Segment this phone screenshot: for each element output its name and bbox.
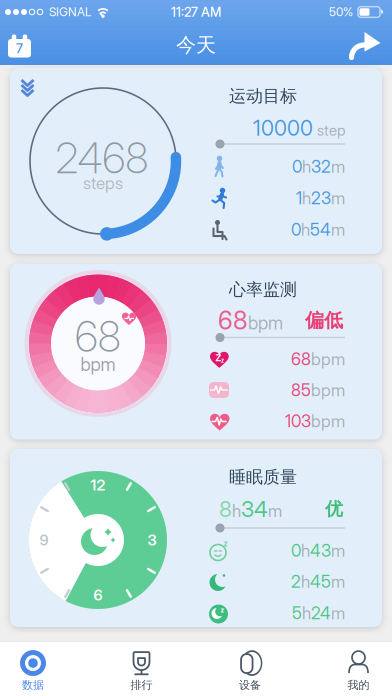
staticText: bpm — [80, 354, 115, 375]
staticText: 34 — [241, 496, 268, 522]
staticText: 45 — [310, 571, 331, 592]
staticText: h — [301, 540, 310, 561]
staticText: steps — [83, 173, 123, 193]
staticText: 85 — [291, 380, 311, 400]
staticText: SIGNAL — [49, 5, 91, 19]
staticText: 54 — [310, 219, 331, 240]
staticText: 43 — [310, 540, 331, 561]
staticText: 运动目标 — [229, 85, 297, 107]
staticText: 103 — [285, 411, 311, 431]
staticText: Z — [215, 353, 221, 363]
staticText: 心率监测 — [229, 279, 297, 300]
staticText: 5 — [292, 603, 302, 623]
staticText: 32 — [311, 156, 331, 177]
staticText: 0 — [291, 219, 301, 240]
staticText: h — [301, 219, 310, 240]
staticText: m — [331, 188, 345, 208]
staticText: 0 — [292, 156, 302, 177]
staticText: 偏低 — [305, 308, 343, 332]
button[interactable]: 数据 — [20, 650, 46, 692]
staticText: 2468 — [55, 133, 148, 183]
staticText: z — [223, 539, 227, 548]
staticText: 11:27 AM — [171, 4, 221, 20]
staticText: 数据 — [22, 678, 44, 692]
staticText: 7 — [16, 41, 23, 56]
staticText: bpm — [248, 312, 283, 334]
staticText: step — [313, 121, 345, 139]
staticText: 1 — [296, 188, 302, 208]
staticText: 优 — [325, 498, 343, 520]
staticText: 10000 — [253, 115, 313, 141]
staticText: m — [331, 219, 345, 240]
staticText: 6 — [93, 586, 102, 604]
staticText: 今天 — [176, 32, 216, 58]
staticText: 我的 — [347, 678, 369, 692]
staticText: bpm — [311, 349, 345, 369]
staticText: z — [221, 357, 224, 364]
staticText: m — [331, 156, 345, 177]
staticText: 2 — [291, 571, 301, 592]
staticText: 3 — [147, 531, 156, 549]
staticText: h — [301, 571, 310, 592]
staticText: 68 — [291, 349, 311, 369]
staticText: bpm — [311, 411, 345, 431]
staticText: 68 — [75, 311, 121, 362]
button[interactable]: Calendar — [7, 34, 31, 57]
button[interactable]: 我的 — [345, 650, 371, 692]
staticText: 9 — [39, 531, 48, 549]
staticText: 0 — [291, 540, 301, 561]
staticText: m — [331, 540, 345, 561]
staticText: 23 — [311, 188, 331, 208]
staticText: 50% — [329, 5, 353, 19]
staticText: m — [331, 603, 345, 623]
staticText: m — [268, 500, 282, 521]
staticText: bpm — [311, 380, 345, 400]
staticText: 排行 — [130, 678, 152, 692]
staticText: 68 — [218, 305, 248, 336]
staticText: h — [302, 188, 311, 208]
staticText: h — [302, 603, 311, 623]
staticText: 12 — [90, 476, 105, 494]
staticText: 24 — [311, 603, 331, 623]
button[interactable]: Share — [347, 32, 380, 58]
button[interactable]: 设备 — [237, 650, 263, 692]
button[interactable]: 排行 — [128, 650, 154, 692]
staticText: 睡眠质量 — [229, 466, 297, 488]
staticText: h — [232, 500, 241, 521]
staticText: h — [302, 156, 311, 177]
staticText: 设备 — [239, 678, 261, 692]
staticText: 8 — [219, 496, 232, 522]
staticText: m — [331, 571, 345, 592]
staticText: z — [220, 606, 224, 614]
